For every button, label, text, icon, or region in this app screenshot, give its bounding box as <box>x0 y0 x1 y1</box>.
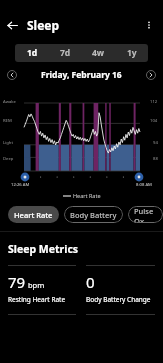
staticText: 0 <box>86 272 95 292</box>
staticText: Heart Rate <box>73 192 101 199</box>
staticText: Body Battery <box>70 210 117 220</box>
staticText: Awake <box>3 99 16 105</box>
staticText: 104 <box>150 118 158 124</box>
staticText: Heart Rate <box>14 210 53 220</box>
staticText: 1y <box>127 47 137 59</box>
staticText: REM <box>3 118 12 124</box>
button[interactable]: Heart Rate <box>8 206 59 223</box>
button[interactable]: 7d <box>49 44 82 62</box>
button[interactable]: 1y <box>115 44 148 62</box>
staticText: 12:26 AM <box>11 182 30 188</box>
staticText: 7d <box>60 47 71 59</box>
button[interactable]: 79 <box>8 265 76 315</box>
staticText: 88 <box>153 156 158 162</box>
staticText: 94 <box>153 140 158 146</box>
button[interactable]: Previous day <box>5 68 19 82</box>
staticText: 8:08 AM <box>136 182 152 188</box>
staticText: Pulse Ox <box>134 206 157 223</box>
button[interactable]: Next day <box>144 68 158 82</box>
staticText: 112 <box>150 99 158 105</box>
staticText: Sleep <box>27 17 60 33</box>
staticText: 1d <box>27 47 38 59</box>
staticText: Friday, February 16 <box>41 69 122 81</box>
staticText: Light <box>3 140 13 146</box>
button[interactable]: More options <box>138 14 160 36</box>
button[interactable]: 4w <box>82 44 115 62</box>
staticText: Sleep Metrics <box>8 242 79 256</box>
button[interactable]: 0 <box>86 265 155 315</box>
staticText: Deep <box>3 156 14 162</box>
staticText: 79 <box>8 272 26 292</box>
button[interactable]: Pulse Ox <box>128 206 163 223</box>
button[interactable]: 1d <box>15 44 49 62</box>
staticText: Resting Heart Rate <box>8 295 66 304</box>
staticText: Body Battery Change <box>86 295 151 304</box>
button[interactable]: Body Battery <box>64 206 123 223</box>
button[interactable]: Back <box>0 13 24 37</box>
staticText: bpm <box>28 280 45 290</box>
staticText: 4w <box>92 47 105 59</box>
